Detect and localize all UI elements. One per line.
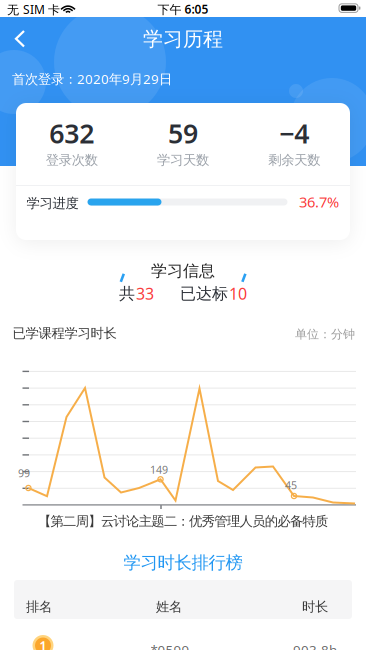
staticText: 10	[229, 283, 247, 304]
staticText: 学习天数	[157, 152, 209, 168]
staticText: 已达标	[180, 284, 228, 303]
staticText: 36.7%	[299, 192, 339, 211]
staticText: 单位：分钟	[295, 327, 355, 342]
staticText: 632	[49, 115, 94, 151]
staticText: −4	[279, 115, 309, 151]
staticText: 学习历程	[143, 27, 223, 51]
staticText: 学习信息	[151, 261, 215, 281]
staticText: 学习进度	[26, 195, 78, 211]
staticText: 903.8h	[293, 641, 337, 650]
staticText: 1	[39, 637, 46, 650]
staticText: 姓名	[156, 598, 182, 615]
staticText: 剩余天数	[268, 152, 320, 168]
staticText: 59	[168, 115, 198, 151]
staticText: 149	[150, 462, 168, 477]
staticText: 登录次数	[46, 152, 98, 168]
staticText: 33	[136, 283, 154, 304]
staticText: 【第二周】云讨论主题二：优秀管理人员的必备特质	[38, 513, 328, 529]
staticText: 首次登录：2020年9月29日	[12, 70, 172, 88]
staticText: *0599	[150, 641, 189, 650]
staticText: 下午 6:05	[157, 1, 208, 17]
staticText: 学习时长排行榜	[123, 552, 242, 573]
button[interactable]: 学习时长排行榜	[0, 552, 366, 573]
staticText: 99	[18, 466, 30, 480]
staticText: 无 SIM 卡	[7, 1, 60, 17]
staticText: 排名	[26, 598, 52, 615]
button[interactable]: 1	[0, 632, 366, 650]
button[interactable]: Back	[7, 22, 33, 55]
staticText: 已学课程学习时长	[12, 325, 116, 341]
staticText: 时长	[302, 598, 328, 615]
staticText: 45	[285, 478, 297, 492]
staticText: 共	[119, 284, 135, 303]
